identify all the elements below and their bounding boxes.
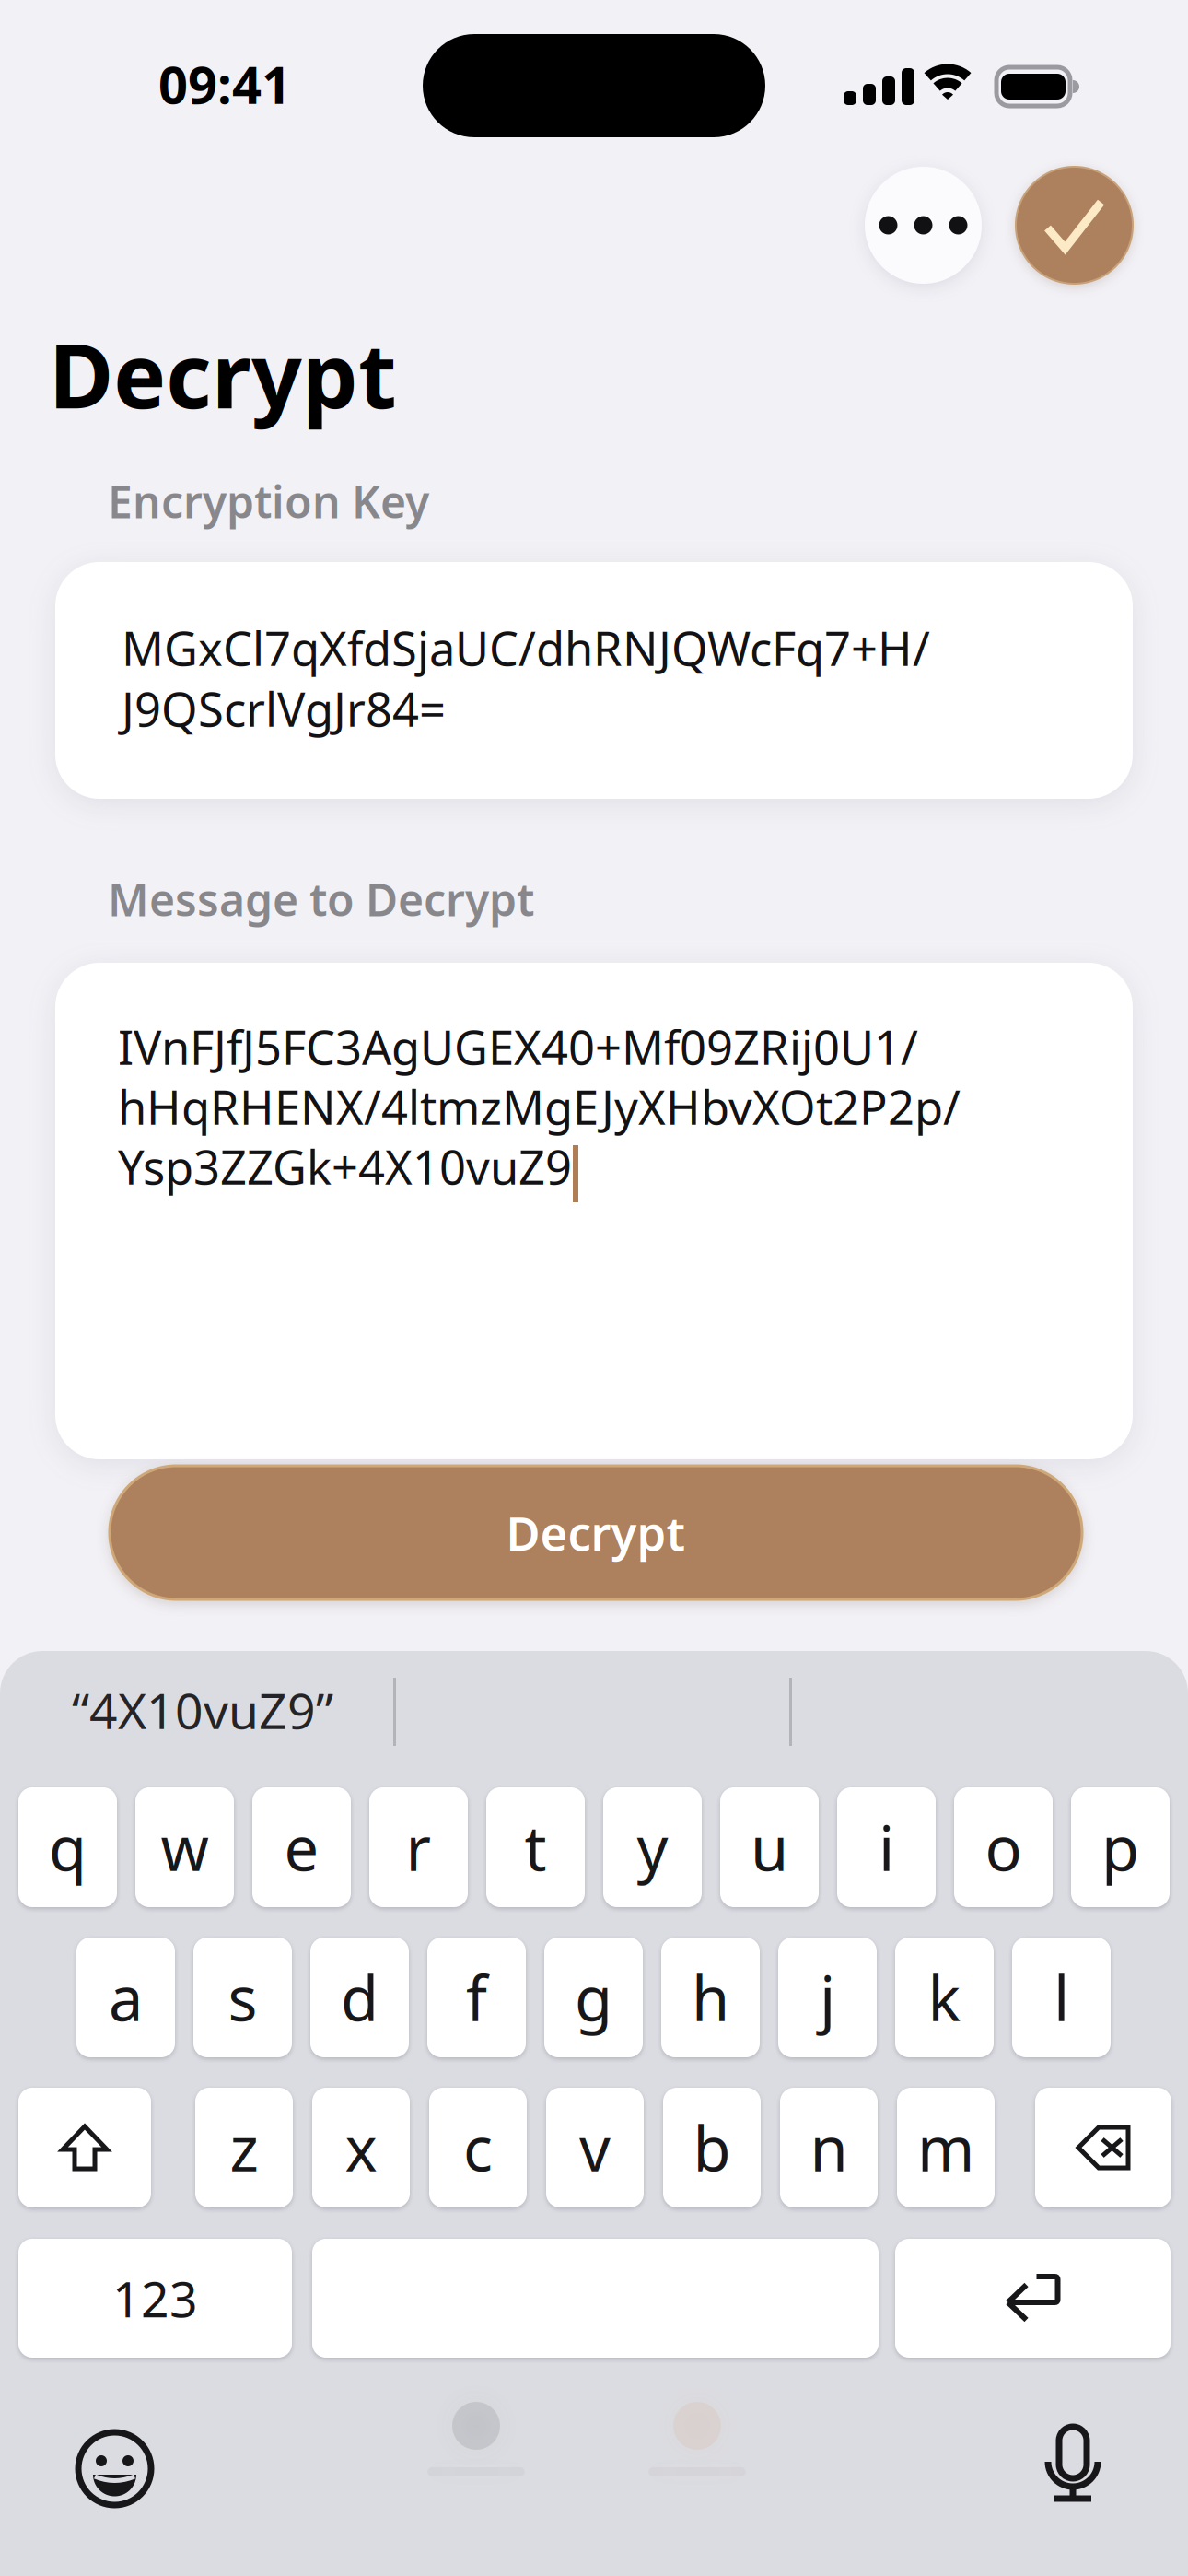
staticText: MGxCl7qXfdSjaUC/dhRNJQWcFq7+H/ [122, 616, 930, 679]
button[interactable]: y [603, 1787, 702, 1907]
button[interactable]: x [312, 2088, 410, 2207]
staticText: t [524, 1805, 547, 1889]
staticText: h [692, 1956, 729, 2039]
staticText: l [1054, 1956, 1069, 2039]
staticText: x [345, 2106, 377, 2189]
staticText: n [810, 2106, 848, 2189]
button[interactable]: e [252, 1787, 351, 1907]
button[interactable]: b [663, 2088, 761, 2207]
staticText: “4X10vuZ9” [72, 1677, 333, 1743]
button[interactable]: Delete [1035, 2088, 1171, 2207]
staticText: e [284, 1805, 319, 1889]
button[interactable]: Decrypt [110, 1466, 1082, 1599]
staticText: hHqRHENX/4ltmzMgEJyXHbvXOt2P2p/ [118, 1075, 961, 1138]
staticText: s [228, 1956, 257, 2039]
staticText: d [341, 1956, 379, 2039]
staticText: r [406, 1805, 431, 1889]
staticText: p [1101, 1805, 1139, 1889]
button[interactable]: f [427, 1938, 526, 2057]
button[interactable]: d [310, 1938, 409, 2057]
button[interactable]: Confirm [1016, 167, 1133, 284]
staticText: m [917, 2106, 974, 2189]
button[interactable]: i [837, 1787, 936, 1907]
button[interactable]: m [897, 2088, 995, 2207]
staticText: 123 [112, 2265, 198, 2332]
button[interactable]: v [546, 2088, 644, 2207]
staticText: k [928, 1956, 961, 2039]
button[interactable]: n [780, 2088, 878, 2207]
staticText: w [161, 1805, 209, 1889]
button[interactable]: Dictate [1047, 2427, 1099, 2502]
staticText: Ysp3ZZGk+4X10vuZ9 [118, 1135, 572, 1198]
staticText: f [466, 1956, 487, 2039]
button[interactable]: a [76, 1938, 175, 2057]
staticText: j [820, 1956, 835, 2039]
button[interactable]: Shift [18, 2088, 151, 2207]
button[interactable]: s [193, 1938, 292, 2057]
staticText: Message to Decrypt [108, 869, 534, 929]
staticText: o [985, 1805, 1022, 1889]
staticText: 09:41 [158, 49, 291, 119]
button[interactable]: g [544, 1938, 643, 2057]
button[interactable]: z [195, 2088, 293, 2207]
staticText: z [230, 2106, 258, 2189]
staticText: a [109, 1956, 143, 2039]
button[interactable]: 123 [18, 2239, 292, 2358]
staticText: i [879, 1805, 894, 1889]
staticText: J9QScrlVgJr84= [122, 677, 446, 740]
staticText: y [637, 1805, 668, 1889]
staticText: Decrypt [49, 314, 397, 434]
button[interactable]: Return [895, 2239, 1171, 2358]
button[interactable]: j [778, 1938, 877, 2057]
staticText: Decrypt [506, 1501, 686, 1564]
staticText: c [463, 2106, 493, 2189]
staticText: u [751, 1805, 788, 1889]
staticText: g [575, 1956, 612, 2039]
button[interactable]: h [661, 1938, 760, 2057]
button[interactable]: p [1071, 1787, 1170, 1907]
button[interactable]: u [720, 1787, 819, 1907]
button[interactable]: q [18, 1787, 117, 1907]
staticText: Encryption Key [108, 471, 429, 531]
button[interactable]: c [429, 2088, 527, 2207]
button[interactable]: o [954, 1787, 1053, 1907]
staticText: v [579, 2106, 611, 2189]
button[interactable]: l [1012, 1938, 1111, 2057]
staticText: b [693, 2106, 731, 2189]
button[interactable]: t [486, 1787, 585, 1907]
button[interactable]: w [135, 1787, 234, 1907]
button[interactable]: More options [865, 167, 982, 284]
staticText: q [49, 1805, 87, 1889]
button[interactable]: k [895, 1938, 994, 2057]
staticText: IVnFJfJ5FC3AgUGEX40+Mf09ZRij0U1/ [118, 1015, 918, 1078]
button[interactable]: r [369, 1787, 468, 1907]
button[interactable]: Emoji [78, 2432, 151, 2505]
